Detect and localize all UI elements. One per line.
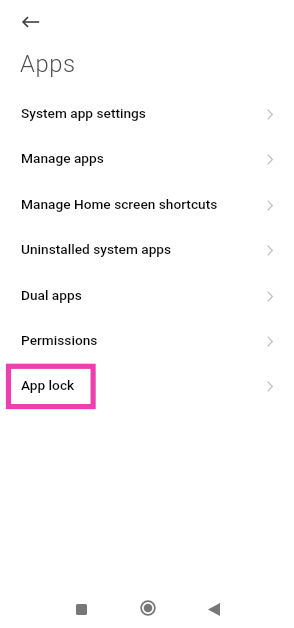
button[interactable]: Recent apps: [63, 591, 99, 627]
staticText: App lock: [21, 377, 75, 393]
staticText: Dual apps: [21, 287, 82, 303]
button[interactable]: Navigate up: [13, 7, 49, 43]
button[interactable]: Home: [130, 590, 166, 626]
staticText: Apps: [20, 50, 76, 78]
button[interactable]: Manage Home screen shortcuts: [0, 181, 294, 226]
staticText: Manage Home screen shortcuts: [21, 196, 218, 212]
button[interactable]: Back: [196, 591, 232, 627]
button[interactable]: Permissions: [0, 317, 294, 362]
staticText: Manage apps: [21, 150, 104, 166]
button[interactable]: App lock: [0, 362, 294, 407]
staticText: Uninstalled system apps: [21, 241, 172, 257]
button[interactable]: Dual apps: [0, 272, 294, 317]
button[interactable]: Uninstalled system apps: [0, 226, 294, 271]
staticText: Permissions: [21, 332, 98, 348]
button[interactable]: System app settings: [0, 90, 294, 135]
button[interactable]: Manage apps: [0, 135, 294, 180]
staticText: System app settings: [21, 105, 146, 121]
